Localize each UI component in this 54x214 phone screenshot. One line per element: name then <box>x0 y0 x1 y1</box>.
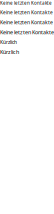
staticText: Keine letzten Kontakte <box>0 0 52 6</box>
staticText: Keine letzten Kontakte <box>0 9 53 16</box>
staticText: Keine letzten Kontakte <box>0 29 54 36</box>
staticText: Kürzlich <box>0 39 17 45</box>
staticText: Kürzlich <box>0 48 19 56</box>
staticText: Keine letzten Kontakte <box>0 19 53 26</box>
